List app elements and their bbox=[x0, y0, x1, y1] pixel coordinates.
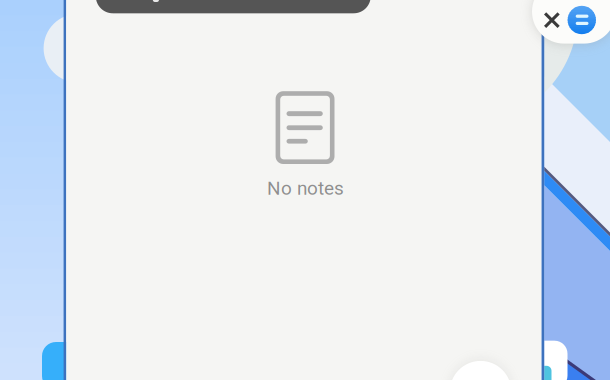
button[interactable]: Window controls bbox=[0, 0, 610, 380]
button[interactable]: New note bbox=[0, 0, 610, 380]
button[interactable]: Close bbox=[0, 0, 610, 380]
staticText: No notes bbox=[267, 177, 344, 199]
button[interactable]: Menu bbox=[0, 0, 610, 380]
